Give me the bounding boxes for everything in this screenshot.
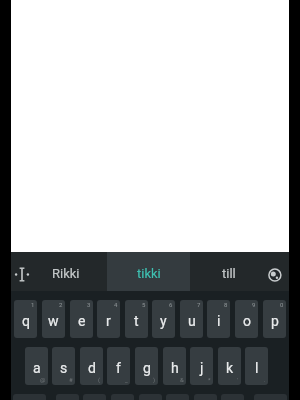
staticText: k [226, 360, 234, 376]
staticText: g [143, 360, 151, 376]
button[interactable]: Rikki [37, 252, 95, 291]
staticText: 1 [31, 301, 35, 308]
button[interactable]: till [196, 252, 262, 291]
button[interactable]: p [263, 300, 286, 338]
button[interactable]: h [163, 347, 186, 385]
staticText: Rikki [52, 266, 80, 281]
staticText: e [78, 313, 86, 329]
staticText: 0 [280, 301, 284, 308]
staticText: o [243, 313, 251, 329]
button[interactable]: g [135, 347, 158, 385]
button[interactable]: f [107, 347, 130, 385]
button[interactable]: w [42, 300, 65, 338]
staticText: p [271, 313, 279, 329]
staticText: ) [153, 376, 156, 383]
staticText: _ [125, 376, 128, 383]
button[interactable]: t [125, 300, 148, 338]
button[interactable] [262, 252, 289, 291]
staticText: till [222, 266, 236, 281]
staticText: 4 [114, 301, 118, 308]
staticText: q [22, 313, 30, 329]
staticText: 3 [87, 301, 91, 308]
button[interactable]: y [152, 300, 175, 338]
staticText: j [200, 360, 204, 376]
button[interactable]: j [190, 347, 213, 385]
staticText: ( [98, 376, 101, 383]
staticText: r [106, 313, 111, 329]
staticText: * [208, 376, 211, 383]
staticText: u [188, 313, 196, 329]
staticText: y [160, 313, 167, 329]
button[interactable]: s [52, 347, 75, 385]
button[interactable]: tikki [107, 252, 190, 291]
staticText: 7 [197, 301, 201, 308]
button[interactable]: i [207, 300, 230, 338]
staticText: 8 [224, 301, 228, 308]
staticText: @ [40, 376, 46, 383]
button[interactable]: d [80, 347, 103, 385]
staticText: ' [237, 376, 239, 383]
staticText: t [134, 313, 139, 329]
staticText: a [33, 360, 41, 376]
staticText: # [69, 376, 73, 383]
staticText: w [48, 313, 59, 329]
staticText: 6 [169, 301, 173, 308]
staticText: 5 [142, 301, 146, 308]
staticText: l [255, 360, 259, 376]
button[interactable]: l [245, 347, 268, 385]
staticText: s [60, 360, 68, 376]
button[interactable]: u [180, 300, 203, 338]
staticText: 9 [252, 301, 256, 308]
button[interactable]: k [218, 347, 241, 385]
staticText: . [264, 376, 266, 383]
staticText: i [217, 313, 221, 329]
button[interactable]: a [25, 347, 48, 385]
staticText: d [88, 360, 96, 376]
button[interactable]: o [235, 300, 258, 338]
button[interactable] [11, 252, 37, 291]
staticText: h [171, 360, 179, 376]
button[interactable]: e [70, 300, 93, 338]
staticText: f [116, 360, 121, 376]
button[interactable]: r [97, 300, 120, 338]
staticText: tikki [137, 266, 161, 281]
staticText: 2 [59, 301, 63, 308]
staticText: & [180, 376, 184, 383]
button[interactable]: q [14, 300, 37, 338]
